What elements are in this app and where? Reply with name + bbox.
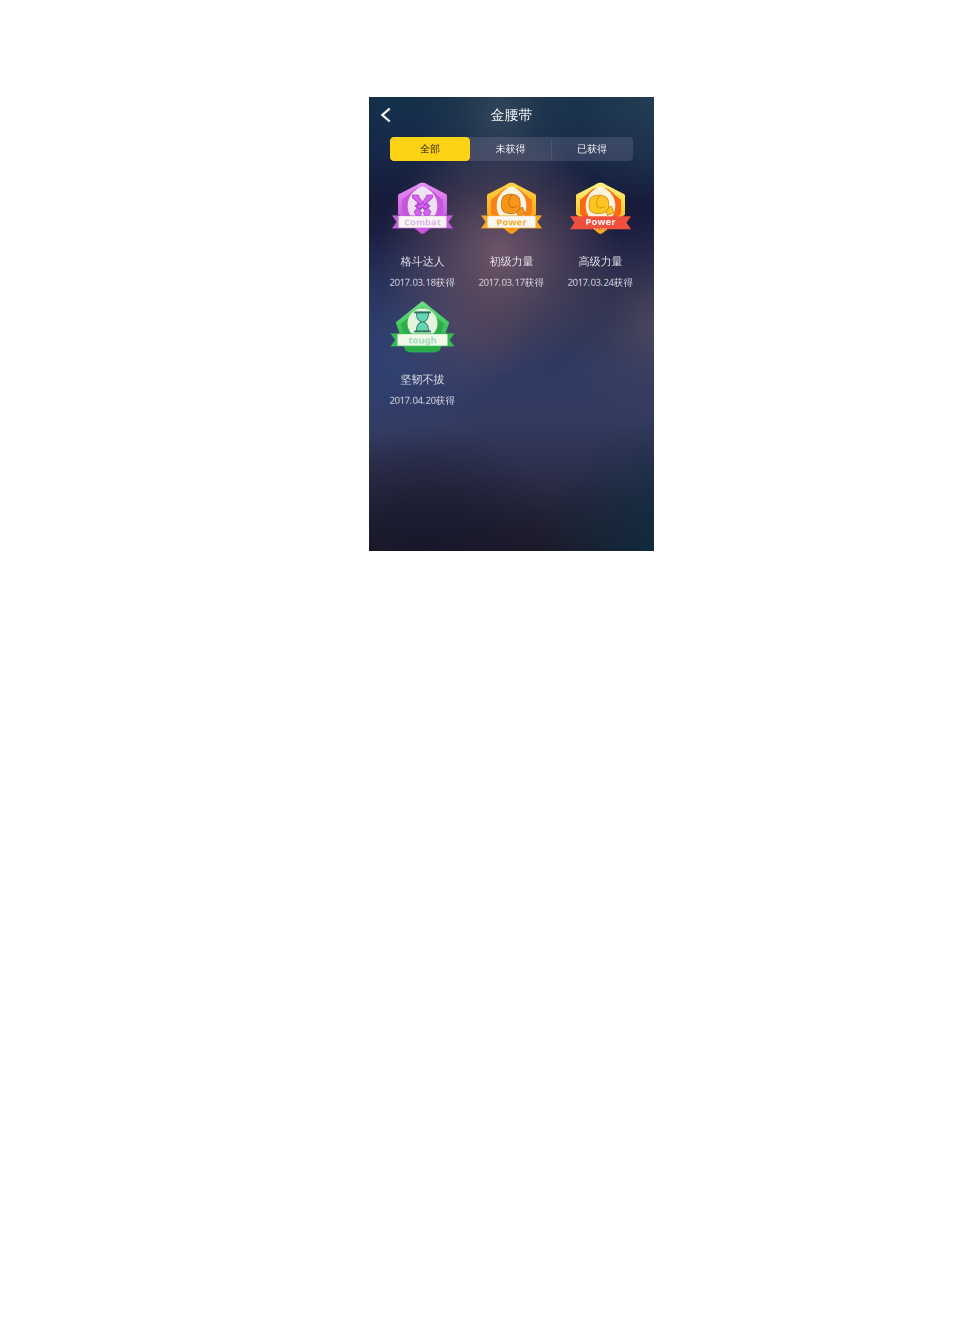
staticText: 全部 <box>420 143 440 155</box>
staticText: 未获得 <box>495 143 525 155</box>
staticText: 高级力量 <box>578 254 622 268</box>
button[interactable]: Power <box>467 183 556 288</box>
staticText: Power <box>496 216 526 228</box>
button[interactable]: 未获得 <box>470 137 551 161</box>
staticText: Combat <box>404 216 441 228</box>
staticText: 初级力量 <box>489 254 533 268</box>
staticText: 2017.04.20获得 <box>389 393 455 407</box>
button[interactable]: Back <box>370 97 402 133</box>
button[interactable]: Power <box>556 183 645 288</box>
staticText: 已获得 <box>577 143 607 155</box>
button[interactable]: 全部 <box>390 137 470 161</box>
staticText: 2017.03.24获得 <box>567 275 633 289</box>
staticText: 金腰带 <box>490 106 532 124</box>
staticText: Power <box>585 215 615 228</box>
staticText: 2017.03.18获得 <box>389 275 455 289</box>
button[interactable]: 已获得 <box>551 137 633 161</box>
button[interactable]: tough <box>378 301 467 406</box>
button[interactable]: Combat <box>378 183 467 288</box>
staticText: 格斗达人 <box>400 254 444 268</box>
staticText: 2017.03.17获得 <box>478 275 544 289</box>
staticText: 坚韧不拔 <box>400 372 444 386</box>
staticText: tough <box>408 334 436 346</box>
